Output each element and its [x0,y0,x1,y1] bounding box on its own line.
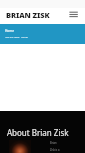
staticText: About Brian Zisk [7,127,69,138]
staticText: BRIAN ZISK [6,10,50,20]
staticText: Home [5,29,15,33]
button[interactable]: Menu [67,9,81,20]
staticText: Zisk is a [50,148,60,152]
staticText: You are here: Home [5,35,28,38]
staticText: Brian [50,141,57,145]
